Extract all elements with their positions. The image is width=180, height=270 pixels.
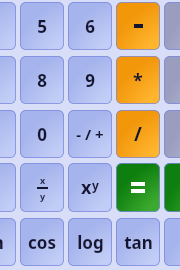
- staticText: log: [77, 231, 104, 254]
- button[interactable]: Memory plus: [164, 56, 180, 104]
- button[interactable]: Memory recall: [164, 2, 180, 50]
- button[interactable]: x to the power of y: [68, 163, 112, 212]
- button[interactable]: Equals: [116, 163, 160, 212]
- button[interactable]: Cosine: [20, 218, 64, 266]
- button[interactable]: Multiply: [116, 56, 160, 104]
- button[interactable]: Six: [68, 2, 112, 50]
- staticText: 5: [37, 15, 47, 38]
- button[interactable]: Memory minus: [164, 110, 180, 158]
- staticText: y: [92, 177, 99, 193]
- button[interactable]: Enter: [164, 163, 180, 212]
- button[interactable]: Natural log: [164, 218, 180, 266]
- button[interactable]: Logarithm: [68, 218, 112, 266]
- button[interactable]: Zero: [20, 110, 64, 158]
- button[interactable]: Five: [20, 2, 64, 50]
- button[interactable]: Divide: [116, 110, 160, 158]
- staticText: x: [40, 174, 46, 186]
- button[interactable]: Nine: [68, 56, 112, 104]
- button[interactable]: Decimal point: [0, 110, 16, 158]
- staticText: sin: [0, 231, 4, 254]
- button[interactable]: Seven: [0, 56, 16, 104]
- staticText: x: [81, 175, 92, 200]
- staticText: *: [133, 68, 143, 93]
- button[interactable]: Square root: [0, 163, 16, 212]
- staticText: cos: [28, 231, 56, 254]
- button[interactable]: Sine: [0, 218, 16, 266]
- staticText: 9: [85, 69, 95, 92]
- button[interactable]: Minus: [116, 2, 160, 50]
- staticText: 6: [85, 15, 95, 38]
- staticText: /: [134, 121, 142, 147]
- button[interactable]: Tangent: [116, 218, 160, 266]
- staticText: tan: [124, 231, 153, 254]
- staticText: 0: [37, 123, 47, 146]
- staticText: y: [40, 190, 46, 202]
- button[interactable]: x over y: [20, 163, 64, 212]
- staticText: - / +: [76, 124, 104, 144]
- button[interactable]: Eight: [20, 56, 64, 104]
- button[interactable]: Change sign: [68, 110, 112, 158]
- staticText: 8: [37, 69, 47, 92]
- button[interactable]: Four: [0, 2, 16, 50]
